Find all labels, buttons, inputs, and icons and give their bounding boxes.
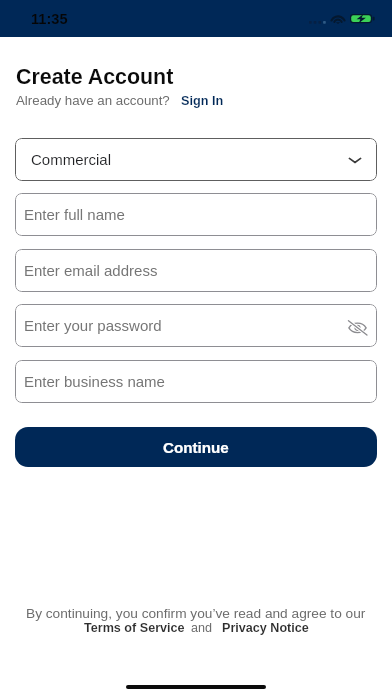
button[interactable]: Commercial (15, 138, 377, 181)
button[interactable]: Enter your password (15, 304, 377, 347)
staticText: 11:35 (31, 11, 68, 27)
button[interactable]: Terms of Service (84, 621, 185, 635)
staticText: Create Account (16, 65, 174, 89)
staticText: Enter email address (24, 262, 158, 279)
staticText: Commercial (31, 151, 112, 168)
button[interactable]: Enter full name (15, 193, 377, 236)
staticText: Continue (163, 439, 229, 456)
other: Battery charging (350, 14, 376, 24)
staticText: Privacy Notice (222, 621, 309, 635)
button[interactable]: Enter email address (15, 249, 377, 292)
button[interactable]: Continue (15, 427, 377, 467)
staticText: Terms of Service (84, 621, 185, 635)
staticText: Sign In (181, 94, 224, 108)
staticText: and (191, 621, 213, 635)
staticText: Enter your password (24, 317, 162, 334)
staticText: Enter full name (24, 206, 125, 223)
button[interactable]: Sign In (181, 94, 224, 108)
button[interactable]: Show password (347, 317, 368, 338)
other: Wi-Fi (330, 14, 346, 24)
staticText: Already have an account? (16, 93, 170, 108)
button[interactable]: Enter business name (15, 360, 377, 403)
staticText: By continuing, you confirm you’ve read a… (26, 606, 366, 621)
button[interactable]: Privacy Notice (222, 621, 309, 635)
staticText: Enter business name (24, 373, 165, 390)
